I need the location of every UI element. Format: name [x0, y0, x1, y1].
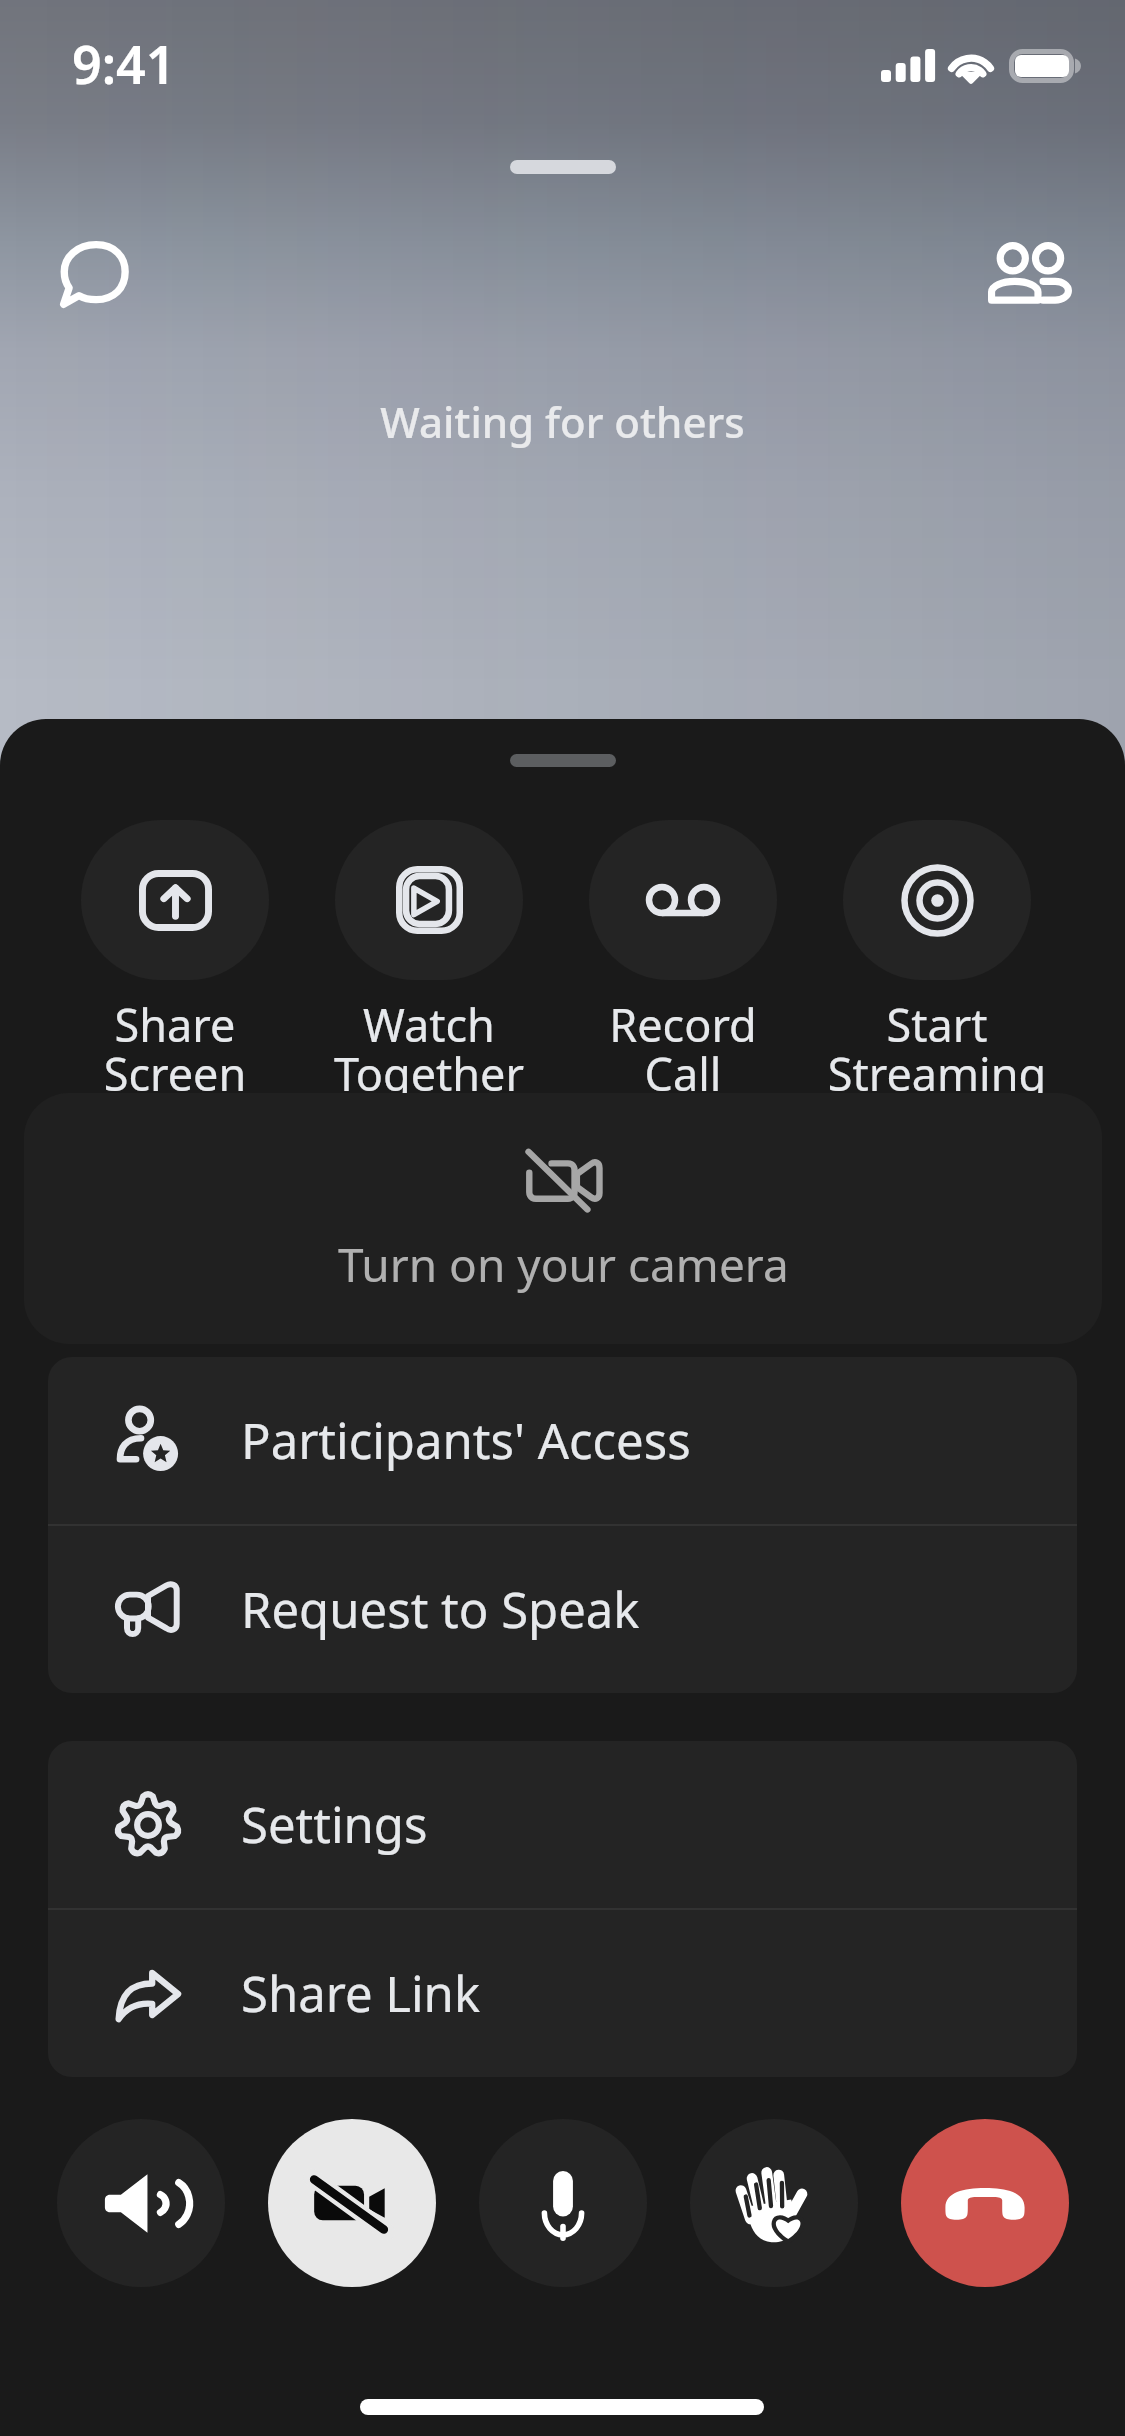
- button[interactable]: Mute microphone: [479, 2119, 647, 2287]
- button[interactable]: [589, 820, 777, 980]
- button[interactable]: Open chat: [34, 219, 154, 329]
- staticText: Start Streaming: [737, 994, 1125, 1105]
- staticText: Share Screen: [0, 994, 375, 1105]
- button[interactable]: End call: [901, 2119, 1069, 2287]
- staticText: Turn on your camera: [338, 1233, 789, 1296]
- button[interactable]: Send reaction: [690, 2119, 858, 2287]
- button[interactable]: Turn on your camera: [24, 1093, 1102, 1344]
- button[interactable]: [81, 820, 269, 980]
- staticText: Settings: [241, 1791, 428, 1858]
- button[interactable]: Turn camera on: [268, 2119, 436, 2287]
- staticText: Record Call: [483, 994, 883, 1105]
- button[interactable]: Request to Speak: [48, 1526, 1077, 1693]
- button[interactable]: Share Link: [48, 1910, 1077, 2077]
- staticText: Watch Together: [229, 994, 629, 1105]
- button[interactable]: Participants' Access: [48, 1357, 1077, 1524]
- staticText: Participants' Access: [241, 1407, 691, 1474]
- staticText: Request to Speak: [241, 1576, 640, 1643]
- button[interactable]: Speaker: [57, 2119, 225, 2287]
- staticText: 9:41: [72, 28, 176, 99]
- button[interactable]: [843, 820, 1031, 980]
- button[interactable]: [335, 820, 523, 980]
- button[interactable]: Settings: [48, 1741, 1077, 1908]
- staticText: Share Link: [241, 1960, 481, 2027]
- button[interactable]: Show participants: [968, 219, 1092, 329]
- staticText: Waiting for others: [380, 393, 745, 450]
